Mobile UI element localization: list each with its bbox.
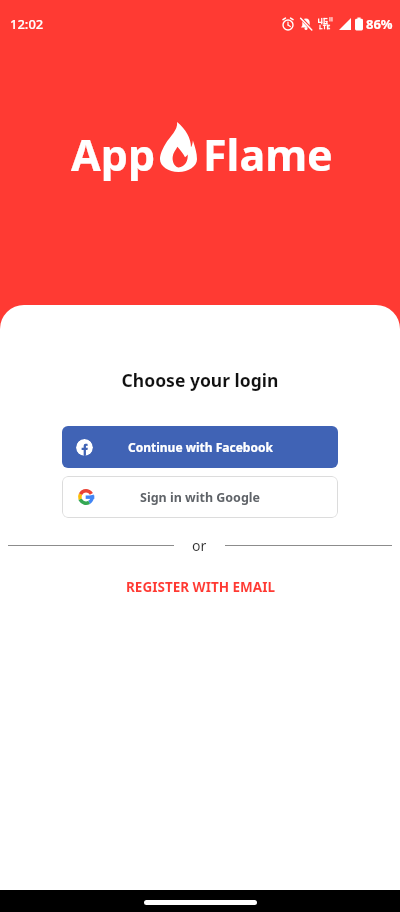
staticText: 12:02 <box>10 15 44 33</box>
button[interactable]: Continue with Facebook <box>62 426 338 468</box>
staticText: or <box>192 536 207 555</box>
staticText: Sign in with Google <box>140 489 261 506</box>
button[interactable]: REGISTER WITH EMAIL <box>116 575 285 599</box>
staticText: Continue with Facebook <box>128 439 273 455</box>
staticText: Flame <box>203 125 333 184</box>
staticText: 86% <box>366 15 393 33</box>
staticText: Choose your login <box>0 368 400 392</box>
button[interactable]: Sign in with Google <box>62 476 338 518</box>
staticText: App <box>71 125 156 184</box>
staticText: REGISTER WITH EMAIL <box>126 578 275 596</box>
